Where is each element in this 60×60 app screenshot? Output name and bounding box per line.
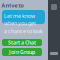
- button[interactable]: Profile: [51, 4, 57, 10]
- staticText: Join Group: [9, 48, 35, 56]
- staticText: Start a Chat: [8, 39, 36, 46]
- staticText: Arrive to: [1, 2, 23, 9]
- staticText: a chance to look: [4, 28, 43, 35]
- button[interactable]: Keyboard: [50, 52, 58, 55]
- staticText: Let me know when you get: [4, 12, 36, 27]
- button[interactable]: Start a Chat: [2, 39, 42, 46]
- button[interactable]: Join Group: [2, 48, 42, 56]
